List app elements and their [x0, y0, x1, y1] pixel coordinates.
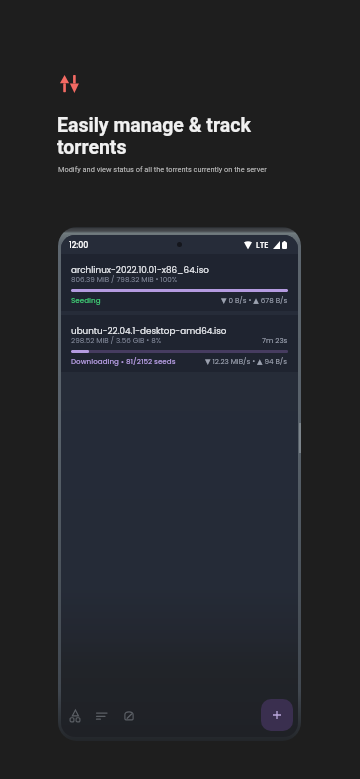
staticText: 298.52 MiB / 3.56 GiB • 8%: [71, 335, 162, 345]
button[interactable]: Sort: [92, 706, 112, 726]
staticText: 12:00: [69, 240, 89, 251]
button[interactable]: ubuntu-22.04.1-desktop-amd64.iso: [61, 315, 298, 372]
staticText: Easily manage & track torrents: [57, 114, 251, 159]
button[interactable]: archlinux-2022.10.01-x86_64.iso: [61, 254, 298, 311]
button[interactable]: Add torrent: [261, 699, 293, 731]
button[interactable]: Speed limits: [119, 706, 139, 726]
button[interactable]: Categories: [65, 706, 85, 726]
staticText: archlinux-2022.10.01-x86_64.iso: [71, 264, 209, 276]
staticText: 7m 23s: [262, 335, 288, 345]
staticText: Modify and view status of all the torren…: [58, 165, 267, 174]
staticText: Downloading • 81/2152 seeds: [71, 356, 176, 366]
staticText: LTE: [256, 239, 269, 250]
staticText: Seeding: [71, 295, 101, 305]
staticText: ▼ 0 B/s • ▲ 678 B/s: [221, 295, 288, 305]
staticText: ▼ 12.23 MiB/s • ▲ 94 B/s: [205, 356, 288, 366]
staticText: ubuntu-22.04.1-desktop-amd64.iso: [71, 325, 227, 337]
staticText: 806.39 MiB / 798.32 MiB • 100%: [71, 274, 178, 284]
